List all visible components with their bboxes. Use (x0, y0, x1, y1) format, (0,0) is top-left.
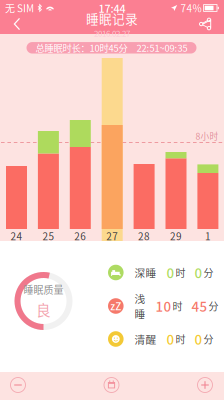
staticText: 睡眠质量 (23, 282, 63, 297)
staticText: 总睡眠时长： (35, 41, 89, 54)
staticText: 10时45分 (89, 41, 127, 54)
staticText: 10 (156, 296, 172, 316)
staticText: 无 SIM (5, 1, 34, 15)
staticText: 27 (106, 229, 118, 243)
staticText: 分 (209, 299, 219, 313)
staticText: 0 (195, 263, 203, 282)
staticText: 22:51~09:35 (136, 41, 187, 54)
button[interactable]: Calendar (85, 371, 137, 399)
staticText: 0 (167, 263, 175, 282)
button[interactable]: Previous day (0, 371, 44, 399)
staticText: 45 (192, 296, 208, 316)
staticText: 1 (205, 229, 211, 243)
staticText: 25 (42, 229, 54, 243)
staticText: 74% (181, 1, 202, 15)
staticText: 良 (36, 299, 51, 320)
staticText: 8小时 (195, 130, 218, 142)
staticText: 时 (176, 265, 186, 280)
staticText: 26 (74, 229, 86, 243)
staticText: 睡眠记录 (86, 9, 138, 27)
staticText: 清醒 (135, 331, 157, 347)
staticText: 2016.02.27 (94, 27, 130, 39)
button[interactable]: Share (190, 12, 220, 36)
staticText: 时 (173, 299, 183, 313)
staticText: zZ (110, 299, 121, 313)
staticText: 0 (195, 329, 203, 349)
staticText: 28 (138, 229, 150, 243)
staticText: 分 (204, 332, 214, 346)
staticText: 时 (176, 332, 186, 346)
staticText: 17:44 (98, 0, 125, 16)
staticText: 24 (10, 229, 22, 243)
staticText: 浅睡 (135, 291, 146, 321)
staticText: 0 (167, 329, 175, 349)
button[interactable]: Next day (179, 371, 224, 399)
staticText: 分 (204, 265, 214, 280)
button[interactable]: Back (2, 12, 32, 36)
staticText: 29 (170, 229, 182, 243)
staticText: 深睡 (135, 265, 157, 280)
